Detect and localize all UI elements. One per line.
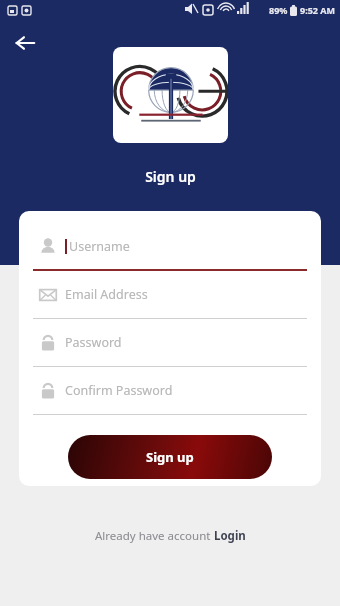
staticText: Email Address bbox=[65, 286, 148, 303]
button[interactable]: Email Address bbox=[33, 271, 307, 319]
button[interactable]: Password bbox=[33, 319, 307, 367]
staticText: Already have account bbox=[95, 528, 214, 544]
button[interactable]: Back bbox=[8, 26, 42, 60]
staticText: 89% bbox=[269, 4, 288, 16]
button[interactable]: Username bbox=[33, 223, 307, 271]
staticText: Login bbox=[214, 528, 246, 544]
button[interactable]: Login bbox=[214, 528, 246, 544]
button[interactable]: Confirm Password bbox=[33, 367, 307, 415]
staticText: Username bbox=[69, 238, 130, 255]
button[interactable]: Sign up bbox=[68, 435, 272, 479]
staticText: Password bbox=[65, 334, 122, 351]
staticText: Confirm Password bbox=[65, 382, 173, 399]
staticText: 9:52 AM bbox=[300, 4, 336, 16]
staticText: Sign up bbox=[146, 448, 194, 466]
staticText: Sign up bbox=[145, 167, 196, 186]
